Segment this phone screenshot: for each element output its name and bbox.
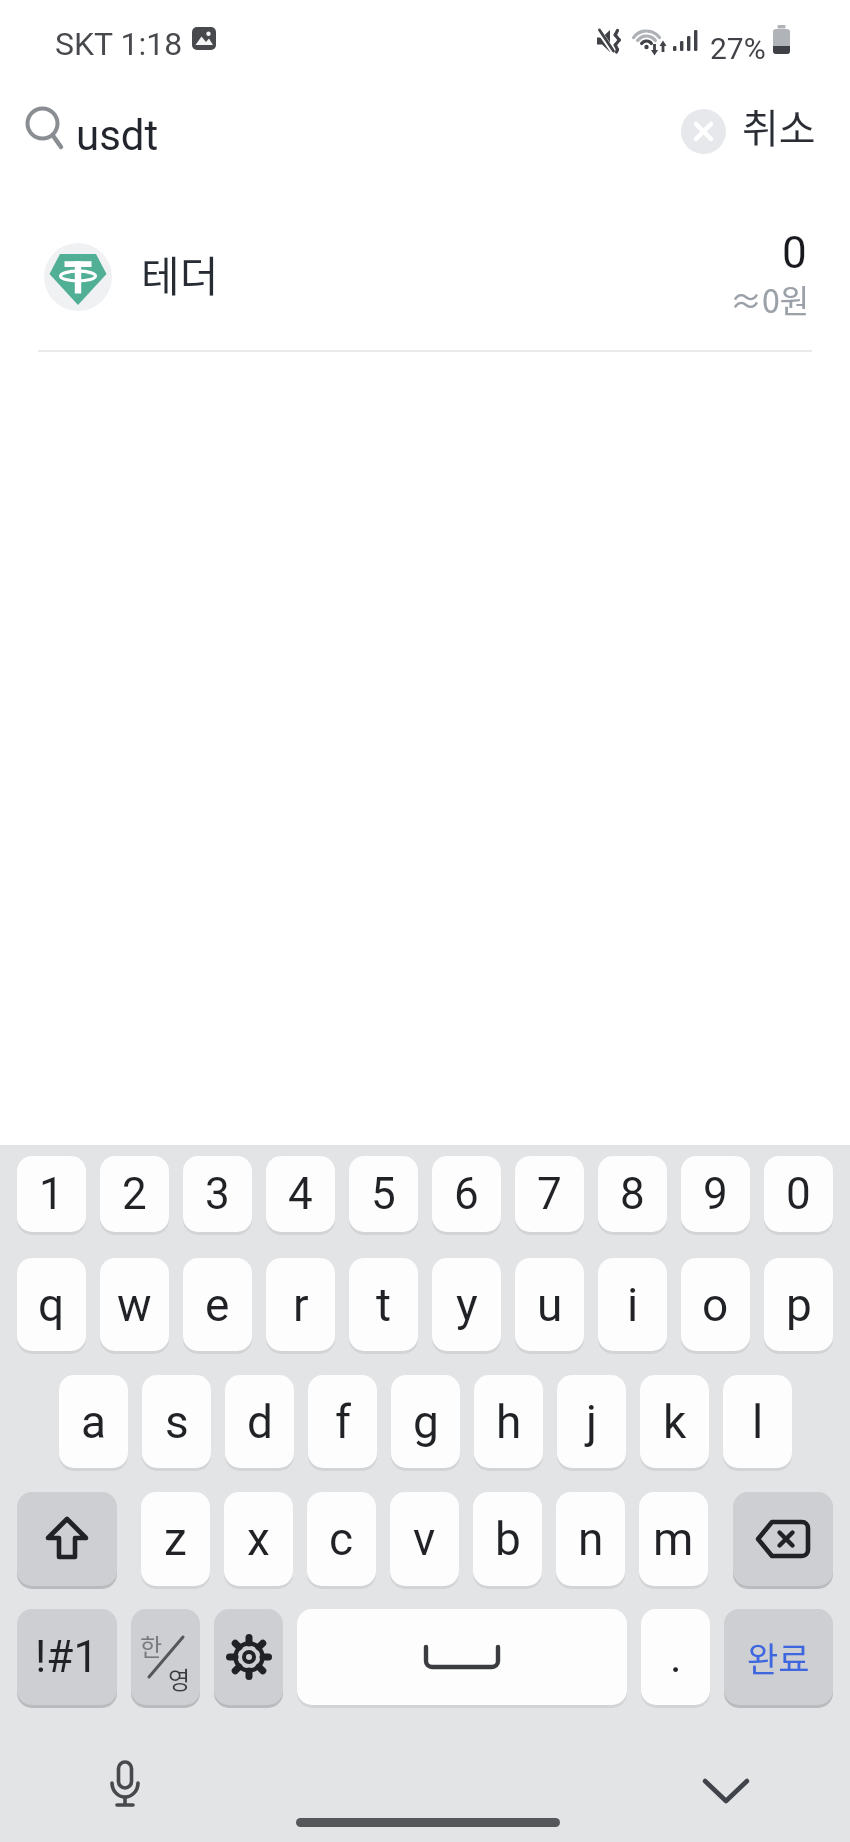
button[interactable]: 4 <box>266 1156 335 1232</box>
button[interactable]: . <box>641 1609 710 1705</box>
staticText: 1 <box>39 1168 64 1220</box>
staticText: usdt <box>76 111 159 149</box>
staticText: v <box>413 1512 436 1566</box>
button[interactable]: w <box>100 1258 169 1351</box>
button[interactable]: d <box>225 1375 294 1468</box>
staticText: !#1 <box>35 1631 99 1683</box>
button[interactable] <box>681 109 726 154</box>
button[interactable]: 6 <box>432 1156 501 1232</box>
staticText: x <box>247 1512 270 1566</box>
button[interactable]: !#1 <box>17 1609 117 1705</box>
button[interactable]: m <box>639 1492 708 1586</box>
button[interactable]: h <box>474 1375 543 1468</box>
staticText: t <box>376 1278 392 1332</box>
staticText: 7 <box>537 1168 562 1220</box>
staticText: e <box>205 1278 230 1332</box>
button[interactable]: f <box>308 1375 377 1468</box>
staticText: k <box>663 1395 687 1449</box>
button[interactable]: e <box>183 1258 252 1351</box>
button[interactable] <box>0 218 850 338</box>
button[interactable]: u <box>515 1258 584 1351</box>
staticText: ≈0원 <box>730 276 810 310</box>
staticText: 취소 <box>742 97 816 143</box>
button[interactable]: a <box>59 1375 128 1468</box>
staticText: o <box>702 1278 729 1332</box>
button[interactable]: 완료 <box>724 1609 833 1705</box>
button[interactable]: b <box>473 1492 542 1586</box>
staticText: f <box>335 1395 351 1449</box>
staticText: c <box>329 1512 354 1566</box>
staticText: d <box>247 1395 273 1449</box>
staticText: 3 <box>205 1168 230 1220</box>
staticText: p <box>786 1278 812 1332</box>
staticText: w <box>117 1278 152 1332</box>
button[interactable]: o <box>681 1258 750 1351</box>
staticText: q <box>38 1278 65 1332</box>
staticText: u <box>537 1278 563 1332</box>
staticText: 영 <box>168 1661 191 1687</box>
button[interactable]: 한 <box>131 1609 200 1705</box>
staticText: 테더 <box>141 243 219 287</box>
button[interactable] <box>297 1609 627 1705</box>
staticText: a <box>81 1395 107 1449</box>
button[interactable]: q <box>17 1258 86 1351</box>
button[interactable]: 7 <box>515 1156 584 1232</box>
button[interactable]: s <box>142 1375 211 1468</box>
button[interactable]: y <box>432 1258 501 1351</box>
button[interactable]: 8 <box>598 1156 667 1232</box>
staticText: l <box>752 1395 764 1449</box>
staticText: j <box>586 1395 598 1449</box>
staticText: 9 <box>703 1168 728 1220</box>
button[interactable]: k <box>640 1375 709 1468</box>
button[interactable]: 3 <box>183 1156 252 1232</box>
button[interactable]: 2 <box>100 1156 169 1232</box>
staticText: i <box>627 1278 639 1332</box>
staticText: 5 <box>371 1168 396 1220</box>
button[interactable]: n <box>556 1492 625 1586</box>
button[interactable]: 9 <box>681 1156 750 1232</box>
button[interactable]: 5 <box>349 1156 418 1232</box>
button[interactable]: z <box>141 1492 210 1586</box>
staticText: 4 <box>288 1168 313 1220</box>
staticText: s <box>165 1395 189 1449</box>
staticText: 2 <box>122 1168 147 1220</box>
button[interactable] <box>17 1492 117 1586</box>
button[interactable]: v <box>390 1492 459 1586</box>
staticText: 한 <box>140 1628 163 1654</box>
button[interactable]: p <box>764 1258 833 1351</box>
staticText: z <box>164 1512 187 1566</box>
staticText: b <box>495 1512 521 1566</box>
button[interactable]: 0 <box>764 1156 833 1232</box>
button[interactable]: g <box>391 1375 460 1468</box>
staticText: 완료 <box>747 1633 810 1682</box>
button[interactable]: x <box>224 1492 293 1586</box>
button[interactable]: c <box>307 1492 376 1586</box>
button[interactable]: i <box>598 1258 667 1351</box>
staticText: y <box>456 1278 478 1332</box>
staticText: n <box>578 1512 604 1566</box>
staticText: 27% <box>710 31 766 55</box>
staticText: 6 <box>454 1168 479 1220</box>
staticText: 0 <box>782 227 807 265</box>
staticText: SKT 1:18 <box>55 25 183 51</box>
staticText: h <box>496 1395 522 1449</box>
button[interactable]: l <box>723 1375 792 1468</box>
button[interactable] <box>214 1609 283 1705</box>
staticText: r <box>293 1278 309 1332</box>
button[interactable]: j <box>557 1375 626 1468</box>
staticText: 0 <box>786 1168 811 1220</box>
button[interactable]: 1 <box>17 1156 86 1232</box>
button[interactable] <box>733 1492 833 1586</box>
button[interactable]: 취소 <box>740 97 818 143</box>
staticText: m <box>653 1512 694 1566</box>
staticText: g <box>413 1395 439 1449</box>
button[interactable]: t <box>349 1258 418 1351</box>
button[interactable]: r <box>266 1258 335 1351</box>
staticText: . <box>670 1631 682 1683</box>
staticText: 8 <box>620 1168 645 1220</box>
